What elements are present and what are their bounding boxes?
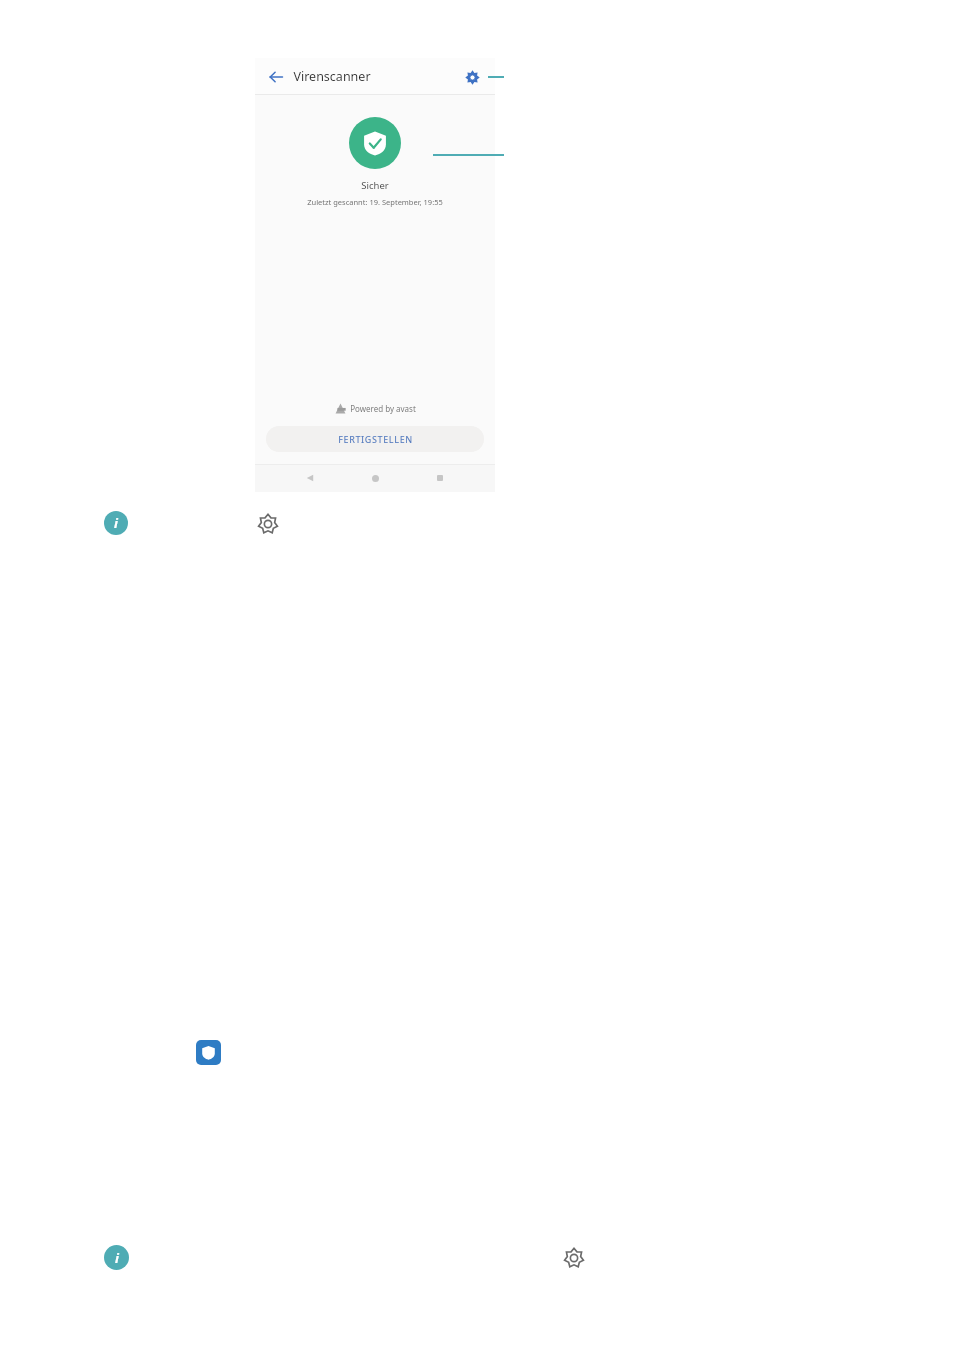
button[interactable]: FERTIGSTELLEN [266,426,484,452]
button[interactable]: Back [265,66,287,88]
staticText: Zuletzt gescannt: 19. September, 19:55 [307,197,443,207]
button[interactable]: Home [365,468,385,488]
staticText: Virenscanner [293,68,371,85]
button[interactable]: Settings [461,66,483,88]
staticText: FERTIGSTELLEN [338,433,413,445]
button[interactable]: Back [300,468,320,488]
button[interactable]: Info [104,511,128,535]
staticText: Powered by avast [350,403,416,414]
button[interactable]: Settings [256,512,280,536]
staticText: Sicher [361,179,389,192]
button[interactable]: Settings [561,1245,586,1270]
staticText: i [115,1249,119,1267]
button[interactable]: Recents [430,468,450,488]
button[interactable]: Virenscanner app [196,1040,221,1065]
button[interactable]: Info [104,1245,129,1270]
staticText: i [114,514,118,532]
